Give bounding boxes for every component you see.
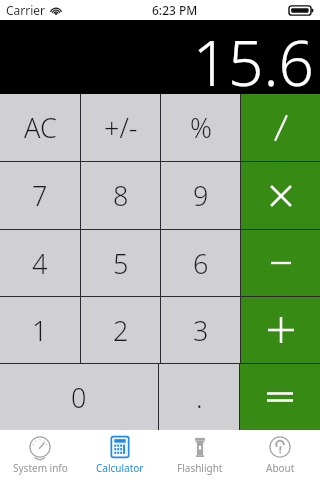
staticText: 5 xyxy=(113,245,129,282)
button[interactable]: 0 xyxy=(0,364,158,430)
button[interactable]: 4 xyxy=(0,230,80,296)
staticText: Carrier xyxy=(6,2,46,18)
staticText: About xyxy=(266,461,295,475)
staticText: 9 xyxy=(193,177,209,214)
staticText: Calculator xyxy=(96,461,144,475)
button[interactable]: 3 xyxy=(161,297,240,363)
button[interactable] xyxy=(241,230,320,296)
button[interactable]: 2 xyxy=(81,297,160,363)
staticText: 6 xyxy=(193,245,209,282)
staticText: AC xyxy=(24,109,57,146)
button[interactable]: 9 xyxy=(161,162,240,229)
staticText: 15.6 xyxy=(192,20,314,94)
staticText: System info xyxy=(13,461,68,475)
button[interactable]: AC xyxy=(0,94,80,161)
button[interactable]: Calculator xyxy=(80,430,160,480)
staticText: % xyxy=(190,109,212,146)
button[interactable]: About xyxy=(240,430,320,480)
staticText: 8 xyxy=(113,177,129,214)
button[interactable]: . xyxy=(159,364,239,430)
button[interactable]: 8 xyxy=(81,162,160,229)
staticText: 2 xyxy=(113,312,129,349)
button[interactable]: System info xyxy=(0,430,80,480)
staticText: 6:23 PM xyxy=(152,2,198,18)
staticText: 4 xyxy=(32,245,48,282)
staticText: +/- xyxy=(104,109,138,146)
staticText: 7 xyxy=(32,177,48,214)
button[interactable]: 5 xyxy=(81,230,160,296)
button[interactable]: Flashlight xyxy=(160,430,240,480)
button[interactable]: 1 xyxy=(0,297,80,363)
staticText: 1 xyxy=(32,312,48,349)
button[interactable] xyxy=(240,364,320,430)
staticText: Flashlight xyxy=(177,461,223,475)
button[interactable] xyxy=(241,162,320,229)
button[interactable]: % xyxy=(161,94,240,161)
button[interactable] xyxy=(241,94,320,161)
staticText: 3 xyxy=(193,312,209,349)
button[interactable] xyxy=(241,297,320,363)
staticText: . xyxy=(196,379,203,416)
button[interactable]: 7 xyxy=(0,162,80,229)
staticText: 0 xyxy=(71,379,87,416)
button[interactable]: 6 xyxy=(161,230,240,296)
button[interactable]: +/- xyxy=(81,94,160,161)
